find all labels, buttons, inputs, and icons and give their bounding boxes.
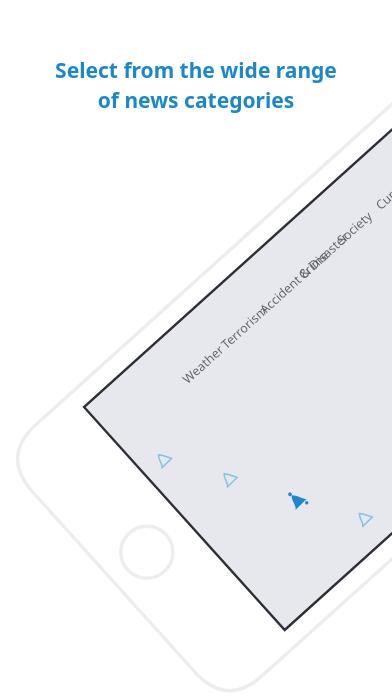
staticText: Select from the wide range of news categ…: [20, 56, 372, 114]
button[interactable]: Select from the wide range of news categ…: [20, 56, 372, 114]
